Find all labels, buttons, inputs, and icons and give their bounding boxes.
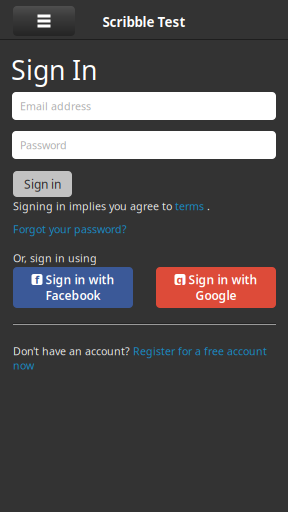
staticText: f — [35, 272, 39, 287]
button[interactable]: g — [156, 267, 276, 308]
staticText: Forgot your password? — [13, 222, 127, 236]
staticText: Don't have an account? Register for a fr… — [13, 344, 267, 372]
staticText: Scribble Test — [102, 13, 185, 31]
button[interactable]: Email address — [12, 92, 276, 120]
staticText: Google — [195, 287, 236, 303]
button[interactable]: f — [13, 267, 133, 308]
button[interactable]: Menu — [13, 6, 75, 36]
staticText: Sign in with — [188, 272, 257, 287]
staticText: Or, sign in using — [13, 251, 97, 265]
button[interactable]: Don't have an account? Register for a fr… — [13, 344, 276, 372]
staticText: Email address — [20, 99, 91, 113]
button[interactable]: Password — [12, 131, 276, 159]
staticText: Facebook — [45, 287, 100, 303]
button[interactable]: Forgot your password? — [13, 222, 127, 236]
button[interactable]: Sign in — [13, 171, 72, 197]
staticText: Sign in with — [45, 272, 114, 287]
staticText: Password — [20, 138, 67, 152]
staticText: g — [176, 272, 183, 287]
staticText: Sign in — [24, 176, 61, 192]
staticText: Signing in implies you agree to terms . — [13, 199, 210, 213]
staticText: Sign In — [11, 52, 97, 87]
